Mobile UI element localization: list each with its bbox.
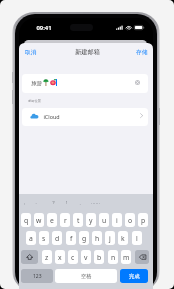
button[interactable]: 123	[21, 269, 53, 283]
staticText: ？	[51, 200, 56, 206]
staticText: a	[29, 234, 33, 243]
button[interactable]: y	[86, 213, 96, 227]
staticText: v	[84, 253, 88, 262]
staticText: b	[97, 253, 102, 262]
staticText: m	[123, 253, 130, 262]
button[interactable]: w	[34, 213, 44, 227]
button[interactable]: m	[121, 250, 131, 264]
staticText: iCloud	[43, 113, 60, 120]
staticText: s	[42, 234, 46, 243]
button[interactable]: u	[99, 213, 109, 227]
staticText: 空格	[81, 273, 92, 280]
staticText: e	[50, 216, 54, 225]
button[interactable]: 取消	[22, 46, 42, 59]
staticText: l	[136, 234, 138, 243]
staticText: u	[102, 216, 107, 225]
button[interactable]: 清除文本	[135, 80, 140, 85]
button[interactable]: Delete	[135, 250, 149, 264]
staticText: k	[121, 234, 125, 243]
staticText: x	[58, 253, 62, 262]
staticText: ！	[64, 200, 69, 206]
staticText: 存储	[136, 49, 148, 56]
button[interactable]: Shift	[21, 250, 38, 264]
staticText: ⋯⋯	[91, 201, 100, 206]
staticText: h	[95, 234, 100, 243]
button[interactable]: 存储	[128, 46, 148, 59]
staticText: 邮箱位置	[28, 99, 41, 103]
staticText: c	[71, 253, 75, 262]
button[interactable]: e	[47, 213, 57, 227]
button[interactable]: h	[92, 231, 102, 245]
button[interactable]: k	[118, 231, 128, 245]
button[interactable]: r	[60, 213, 70, 227]
staticText: n	[111, 253, 116, 262]
staticText: 、	[79, 200, 84, 206]
button[interactable]	[22, 74, 148, 93]
staticText: q	[24, 216, 29, 225]
button[interactable]: d	[52, 231, 62, 245]
staticText: z	[45, 253, 49, 262]
button[interactable]: o	[125, 213, 135, 227]
staticText: 取消	[25, 49, 37, 56]
button[interactable]: j	[105, 231, 115, 245]
button[interactable]: t	[73, 213, 83, 227]
button[interactable]: v	[81, 250, 91, 264]
staticText: y	[89, 216, 93, 225]
staticText: w	[36, 216, 42, 225]
staticText: r	[64, 216, 67, 225]
button[interactable]: 完成	[120, 269, 148, 283]
staticText: 新建邮箱	[75, 48, 100, 56]
button[interactable]: i	[112, 213, 122, 227]
button[interactable]: n	[108, 250, 118, 264]
staticText: t	[77, 216, 80, 225]
button[interactable]: z	[42, 250, 52, 264]
staticText: 123	[33, 273, 42, 280]
button[interactable]: f	[66, 231, 76, 245]
staticText: f	[70, 234, 73, 243]
button[interactable]: x	[55, 250, 65, 264]
staticText: 旅游	[31, 80, 42, 87]
button[interactable]	[22, 108, 148, 126]
button[interactable]: a	[26, 231, 36, 245]
staticText: p	[141, 216, 146, 225]
staticText: g	[82, 234, 87, 243]
staticText: ，	[22, 200, 27, 206]
button[interactable]: c	[68, 250, 78, 264]
button[interactable]: b	[94, 250, 104, 264]
staticText: 09:41	[36, 24, 52, 32]
button[interactable]: l	[132, 231, 142, 245]
button[interactable]: g	[79, 231, 89, 245]
staticText: i	[116, 216, 118, 225]
staticText: 。	[35, 200, 40, 206]
staticText: o	[128, 216, 133, 225]
button[interactable]: p	[138, 213, 148, 227]
staticText: 完成	[129, 273, 140, 280]
staticText: d	[55, 234, 60, 243]
button[interactable]: q	[21, 213, 31, 227]
button[interactable]: 空格	[55, 269, 117, 283]
staticText: j	[109, 234, 111, 243]
button[interactable]: s	[39, 231, 49, 245]
